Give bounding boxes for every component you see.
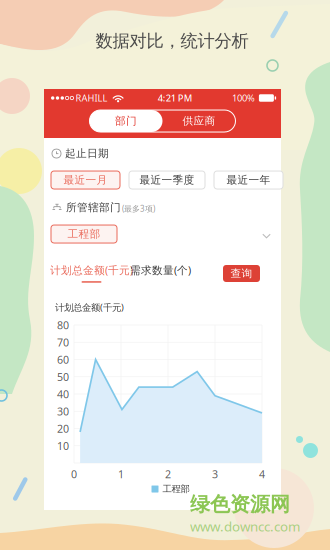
staticText: (最多3项)	[122, 203, 155, 214]
button[interactable]: 工程部	[51, 225, 117, 243]
staticText: 0	[71, 467, 77, 481]
staticText: 60	[57, 352, 69, 367]
staticText: 部门	[115, 114, 137, 127]
staticText: 3	[212, 467, 218, 481]
staticText: 查询	[230, 267, 252, 280]
staticText: 最近一季度	[139, 173, 194, 186]
staticText: 50	[57, 370, 69, 384]
button[interactable]: Expand departments	[257, 228, 276, 244]
staticText: RAHILL	[74, 92, 108, 104]
button[interactable]: 需求数量(个)	[130, 263, 191, 277]
staticText: 2	[165, 467, 171, 481]
staticText: 数据对比，统计分析	[95, 30, 248, 52]
button[interactable]: 计划总金额(千元)	[50, 263, 133, 283]
staticText: 计划总金额(千元)	[50, 263, 133, 277]
button[interactable]: 最近一季度	[129, 171, 205, 189]
staticText: 1	[118, 467, 124, 481]
staticText: 10	[57, 439, 69, 453]
button[interactable]: 最近一月	[51, 171, 120, 189]
staticText: 计划总金额(千元)	[55, 301, 124, 313]
staticText: 80	[57, 318, 69, 332]
staticText: 所管辖部门	[66, 201, 121, 214]
staticText: 4	[259, 467, 265, 481]
staticText: www.downcc.com	[190, 518, 300, 535]
button[interactable]: 最近一年	[214, 171, 283, 189]
staticText: 20	[57, 421, 69, 436]
staticText: 需求数量(个)	[130, 263, 191, 277]
staticText: 工程部	[162, 483, 189, 495]
staticText: 最近一月	[63, 173, 107, 186]
staticText: 起止日期	[65, 147, 109, 160]
staticText: 绿色资源网	[190, 492, 290, 517]
staticText: 40	[57, 387, 69, 401]
button[interactable]: 查询	[223, 265, 260, 282]
staticText: 供应商	[182, 114, 215, 127]
staticText: 4:21 PM	[158, 92, 193, 104]
staticText: 工程部	[67, 227, 100, 240]
staticText: 最近一年	[226, 173, 270, 186]
staticText: 30	[57, 404, 69, 418]
button[interactable]: 供应商	[162, 110, 235, 132]
button[interactable]: 部门	[89, 110, 162, 132]
staticText: 100%	[232, 92, 255, 104]
staticText: 70	[57, 335, 69, 349]
